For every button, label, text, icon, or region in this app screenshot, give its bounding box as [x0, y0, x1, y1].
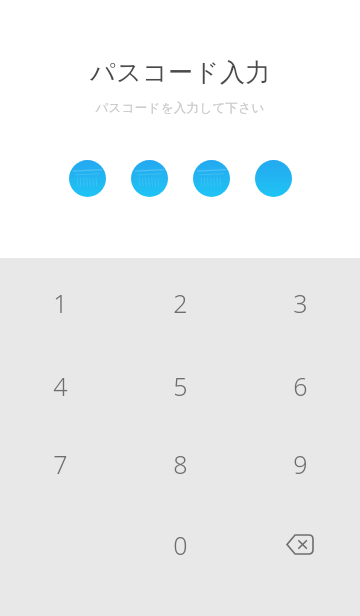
staticText: 6 — [293, 369, 308, 403]
staticText: 1 — [53, 286, 68, 320]
staticText: パスコードを入力して下さい — [95, 100, 265, 116]
button[interactable]: 7 — [0, 425, 120, 503]
button[interactable]: 0 — [120, 503, 240, 586]
button[interactable]: 1 — [0, 258, 120, 347]
button[interactable]: 4 — [0, 347, 120, 425]
staticText: 5 — [173, 369, 188, 403]
button[interactable]: 9 — [240, 425, 360, 503]
staticText: 8 — [173, 447, 188, 481]
button[interactable]: Backspace — [240, 503, 360, 586]
button[interactable]: 6 — [240, 347, 360, 425]
button[interactable]: 3 — [240, 258, 360, 347]
staticText: 7 — [53, 447, 68, 481]
staticText: 0 — [173, 528, 188, 562]
staticText: 4 — [53, 369, 68, 403]
button[interactable]: 5 — [120, 347, 240, 425]
staticText: 2 — [173, 286, 188, 320]
staticText: パスコード入力 — [90, 57, 271, 88]
staticText: 3 — [293, 286, 308, 320]
staticText: 9 — [293, 447, 308, 481]
button[interactable]: 2 — [120, 258, 240, 347]
button[interactable]: 8 — [120, 425, 240, 503]
